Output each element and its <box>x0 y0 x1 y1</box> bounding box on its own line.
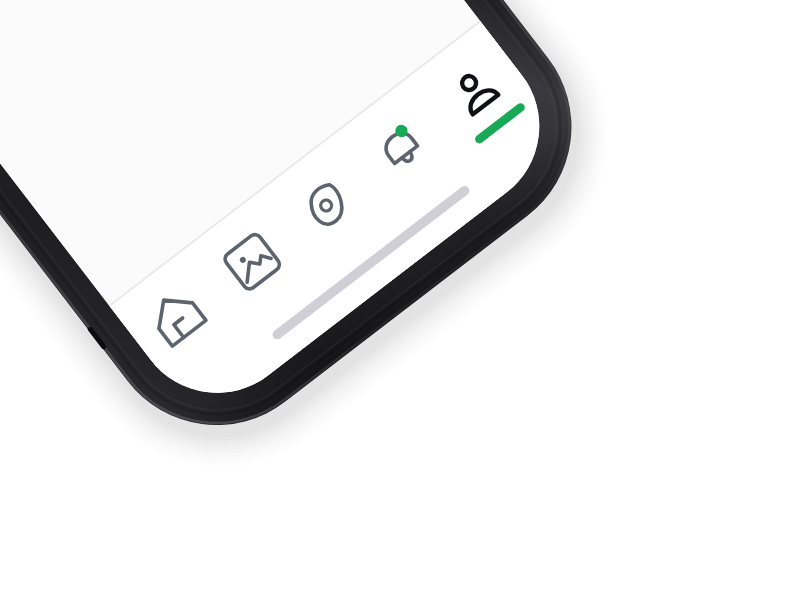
button[interactable]: Profile <box>441 57 509 125</box>
button[interactable]: Home <box>144 285 212 353</box>
button[interactable]: Places <box>292 171 360 239</box>
button[interactable]: Notifications <box>367 114 435 182</box>
button[interactable]: Photos <box>218 228 286 296</box>
